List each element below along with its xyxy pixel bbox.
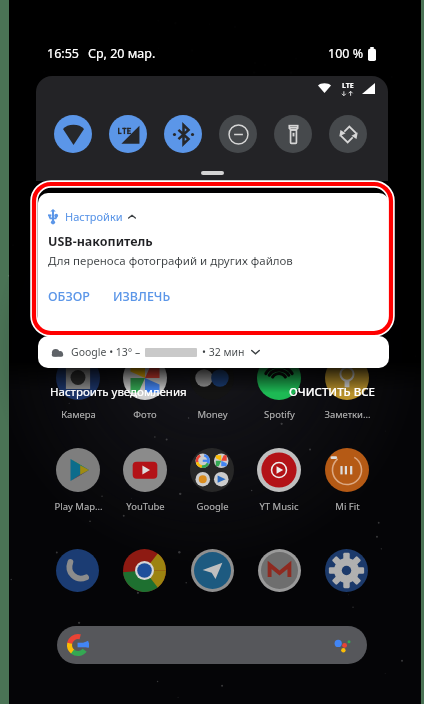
staticText: ИЗВЛЕЧЬ (113, 288, 171, 305)
staticText: Google • 13° – (71, 345, 141, 359)
button[interactable]: Mi Fit (325, 448, 369, 492)
button[interactable]: Search (57, 626, 367, 664)
button[interactable]: Фото (123, 356, 167, 400)
staticText: Google (196, 500, 229, 513)
button[interactable]: ОБЗОР (48, 288, 90, 305)
staticText: • 32 мин (202, 345, 245, 359)
staticText: LTE (342, 81, 354, 91)
staticText: Money (197, 408, 228, 421)
button[interactable]: Do not disturb (219, 115, 257, 153)
button[interactable]: YouTube (123, 448, 167, 492)
button[interactable]: Auto rotate (329, 115, 367, 153)
button[interactable]: Flashlight (274, 115, 312, 153)
staticText: Камера (61, 408, 96, 421)
staticText: YouTube (126, 500, 165, 513)
button[interactable]: Money (190, 356, 234, 400)
button[interactable]: telegram (191, 549, 234, 592)
staticText: Для переноса фотографий и других файлов (48, 253, 293, 269)
staticText: 16:55 (47, 45, 79, 62)
button[interactable]: Камера (56, 356, 100, 400)
button[interactable]: Настроить уведомления (48, 382, 189, 402)
staticText: 100 % (328, 45, 364, 62)
button[interactable]: settings (325, 549, 368, 592)
button[interactable]: Spotify (257, 356, 301, 400)
staticText: USB-накопитель (48, 233, 153, 250)
staticText: Spotify (264, 408, 295, 421)
staticText: Настроить уведомления (50, 384, 187, 400)
button[interactable]: Bluetooth (164, 115, 202, 153)
button[interactable]: phone (56, 549, 99, 592)
button[interactable]: Mobile data (109, 115, 147, 153)
button[interactable]: ОЧИСТИТЬ ВСЕ (287, 382, 378, 402)
button[interactable]: Заметки… (325, 356, 369, 400)
button[interactable]: Настройки (38, 193, 389, 331)
button[interactable]: YT Music (257, 448, 301, 492)
staticText: ОБЗОР (48, 288, 90, 305)
staticText: YT Music (259, 500, 299, 513)
button[interactable]: chrome (123, 549, 166, 592)
staticText: Mi Fit (335, 500, 360, 513)
button[interactable]: Google (190, 448, 234, 492)
staticText: Ср, 20 мар. (88, 45, 156, 62)
staticText: ОЧИСТИТЬ ВСЕ (289, 384, 376, 400)
staticText: Настройки (65, 209, 123, 224)
button[interactable]: gmail (258, 549, 301, 592)
staticText: Заметки… (324, 408, 371, 421)
staticText: Play Мар… (54, 500, 103, 513)
button[interactable]: Play Мар… (56, 448, 100, 492)
button[interactable]: Google • 13° – (38, 336, 389, 368)
button[interactable]: ИЗВЛЕЧЬ (113, 288, 171, 305)
button[interactable]: Wi-Fi (54, 115, 92, 153)
staticText: Фото (133, 408, 157, 421)
